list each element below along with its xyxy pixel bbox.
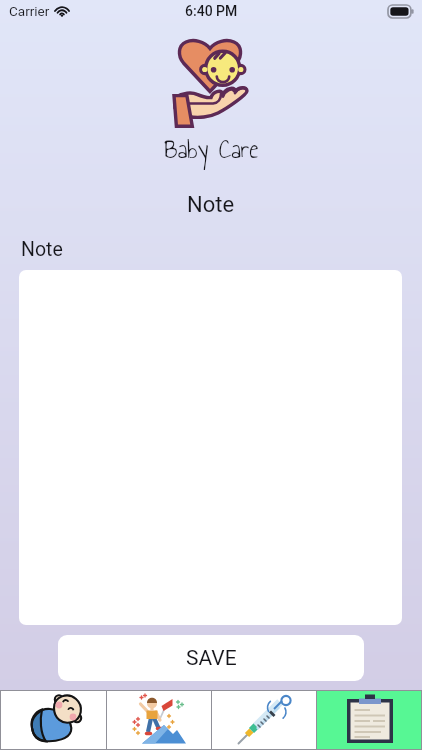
button[interactable]: Vaccines: [212, 691, 316, 749]
staticText: Note: [187, 192, 235, 218]
staticText: 6:40 PM: [185, 3, 238, 19]
staticText: Note: [21, 238, 63, 261]
button[interactable]: Baby: [1, 691, 106, 749]
staticText: SAVE: [186, 646, 237, 671]
staticText: Carrier: [9, 3, 50, 19]
button[interactable]: Growth: [107, 691, 211, 749]
button[interactable]: SAVE: [58, 635, 364, 681]
button[interactable]: Notes: [317, 691, 421, 749]
staticText: Baby Care: [164, 129, 259, 170]
